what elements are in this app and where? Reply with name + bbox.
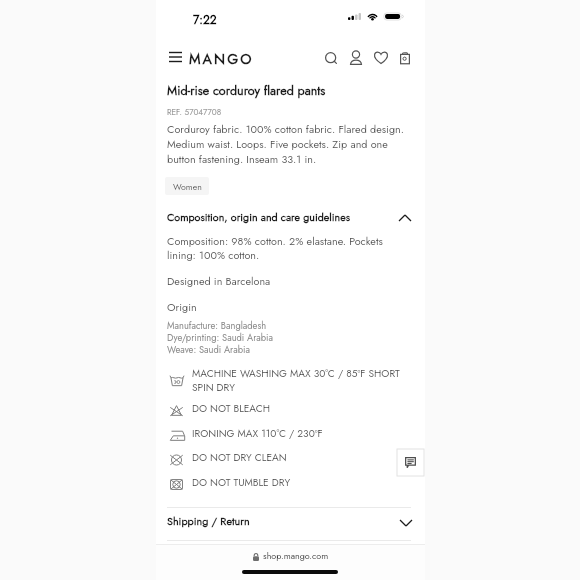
staticText: Shipping / Return bbox=[167, 517, 250, 528]
staticText: REF. 57047708 bbox=[167, 108, 222, 117]
staticText: IRONING MAX 110°C / 230ºF bbox=[192, 428, 416, 440]
staticText: Composition: 98% cotton. 2% elastane. Po… bbox=[167, 235, 411, 263]
staticText: DO NOT BLEACH bbox=[192, 403, 416, 415]
staticText: DO NOT DRY CLEAN bbox=[192, 452, 416, 464]
staticText: MACHINE WASHING MAX 30°C / 85ºF SHORT SP… bbox=[192, 367, 416, 395]
staticText: shop.mango.com bbox=[263, 552, 329, 562]
staticText: MANGO bbox=[189, 49, 254, 70]
staticText: DO NOT TUMBLE DRY bbox=[192, 477, 416, 489]
button[interactable]: shop.mango.com bbox=[253, 552, 329, 562]
button[interactable]: Account bbox=[345, 47, 367, 69]
button[interactable]: Wishlist bbox=[370, 46, 392, 68]
staticText: Mid-rise corduroy flared pants bbox=[167, 85, 326, 98]
staticText: Corduroy fabric. 100% cotton fabric. Fla… bbox=[167, 122, 411, 167]
button[interactable]: Menu bbox=[164, 45, 187, 68]
staticText: Designed in Barcelona bbox=[167, 276, 271, 288]
button[interactable]: Women bbox=[165, 177, 209, 195]
staticText: Manufacture: Bangladesh Dye/printing: Sa… bbox=[167, 320, 274, 356]
staticText: 7:22 bbox=[193, 11, 217, 28]
button[interactable]: Shopping bag bbox=[394, 47, 416, 69]
button[interactable]: Chat with us bbox=[397, 449, 424, 476]
staticText: Women bbox=[173, 183, 202, 192]
button[interactable]: Composition, origin and care guidelines bbox=[156, 205, 425, 230]
button[interactable]: Search bbox=[320, 47, 342, 69]
staticText: Origin bbox=[167, 302, 197, 314]
button[interactable]: Shipping / Return bbox=[156, 507, 425, 540]
staticText: Composition, origin and care guidelines bbox=[167, 213, 351, 224]
